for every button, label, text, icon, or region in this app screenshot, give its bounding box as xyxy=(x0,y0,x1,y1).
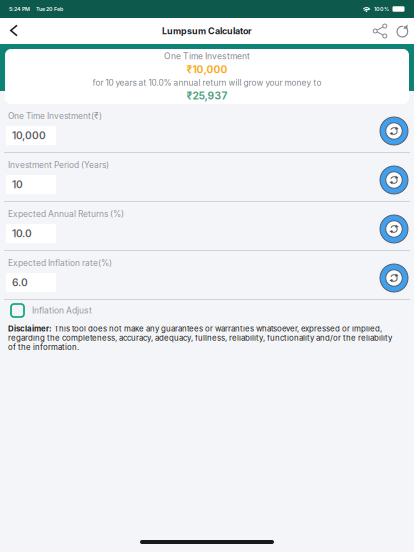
staticText: Inflation Adjust xyxy=(32,305,92,316)
staticText: 6.0 xyxy=(12,276,28,289)
button[interactable]: Inflation Adjust xyxy=(0,300,414,321)
staticText: 5:24 PM xyxy=(9,6,30,12)
staticText: 100% xyxy=(374,6,389,12)
staticText: for 10 years at 10.0% annual return will… xyxy=(92,78,321,88)
button[interactable]: Back xyxy=(0,18,28,44)
button[interactable]: Refresh xyxy=(392,18,414,44)
staticText: One Time Investment xyxy=(164,51,250,61)
staticText: Investment Period (Years) xyxy=(8,160,109,170)
staticText: ₹25,937 xyxy=(186,90,227,102)
staticText: Tue 20 Feb xyxy=(36,6,63,12)
staticText: ₹10,000 xyxy=(186,63,227,76)
staticText: 10.0 xyxy=(12,227,32,240)
staticText: One Time Investment(₹) xyxy=(8,111,102,121)
staticText: Lumpsum Calculator xyxy=(162,26,252,36)
staticText: 10 xyxy=(12,178,23,191)
staticText: 10,000 xyxy=(12,129,46,142)
button[interactable]: Reset value xyxy=(377,261,411,295)
button[interactable]: Share xyxy=(369,18,391,44)
button[interactable]: Reset value xyxy=(377,163,411,197)
staticText: Disclaimer: This tool does not make any … xyxy=(8,324,392,352)
staticText: Expected Annual Returns (%) xyxy=(8,209,124,219)
staticText: Expected Inflation rate(%) xyxy=(8,258,112,268)
button[interactable]: Reset value xyxy=(377,114,411,148)
button[interactable]: Reset value xyxy=(377,212,411,246)
